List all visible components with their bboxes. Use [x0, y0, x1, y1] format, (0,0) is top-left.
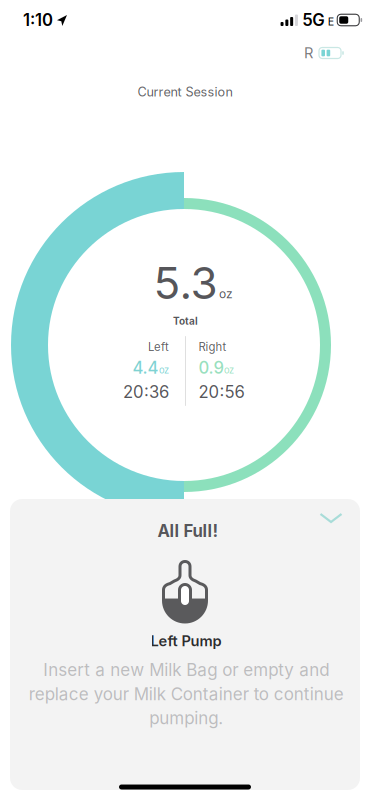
staticText: 20:36: [123, 382, 169, 402]
staticText: R: [304, 44, 313, 62]
staticText: oz: [219, 287, 233, 301]
staticText: 4.4: [132, 358, 158, 378]
staticText: 1:10: [23, 10, 53, 30]
staticText: 5.3: [153, 256, 217, 310]
button[interactable]: Collapse: [309, 503, 352, 533]
staticText: Left: [148, 340, 169, 354]
staticText: Insert a new Milk Bag or empty and repla…: [28, 660, 343, 728]
staticText: Current Session: [137, 84, 232, 100]
staticText: 5G: [302, 10, 324, 30]
staticText: oz: [159, 365, 169, 376]
staticText: Left Pump: [150, 632, 221, 650]
staticText: E: [328, 15, 334, 28]
staticText: Right: [198, 340, 226, 354]
staticText: 20:56: [198, 382, 244, 402]
staticText: Total: [173, 315, 198, 327]
staticText: All Full!: [157, 521, 218, 541]
staticText: oz: [224, 365, 234, 376]
staticText: 0.9: [198, 358, 223, 378]
